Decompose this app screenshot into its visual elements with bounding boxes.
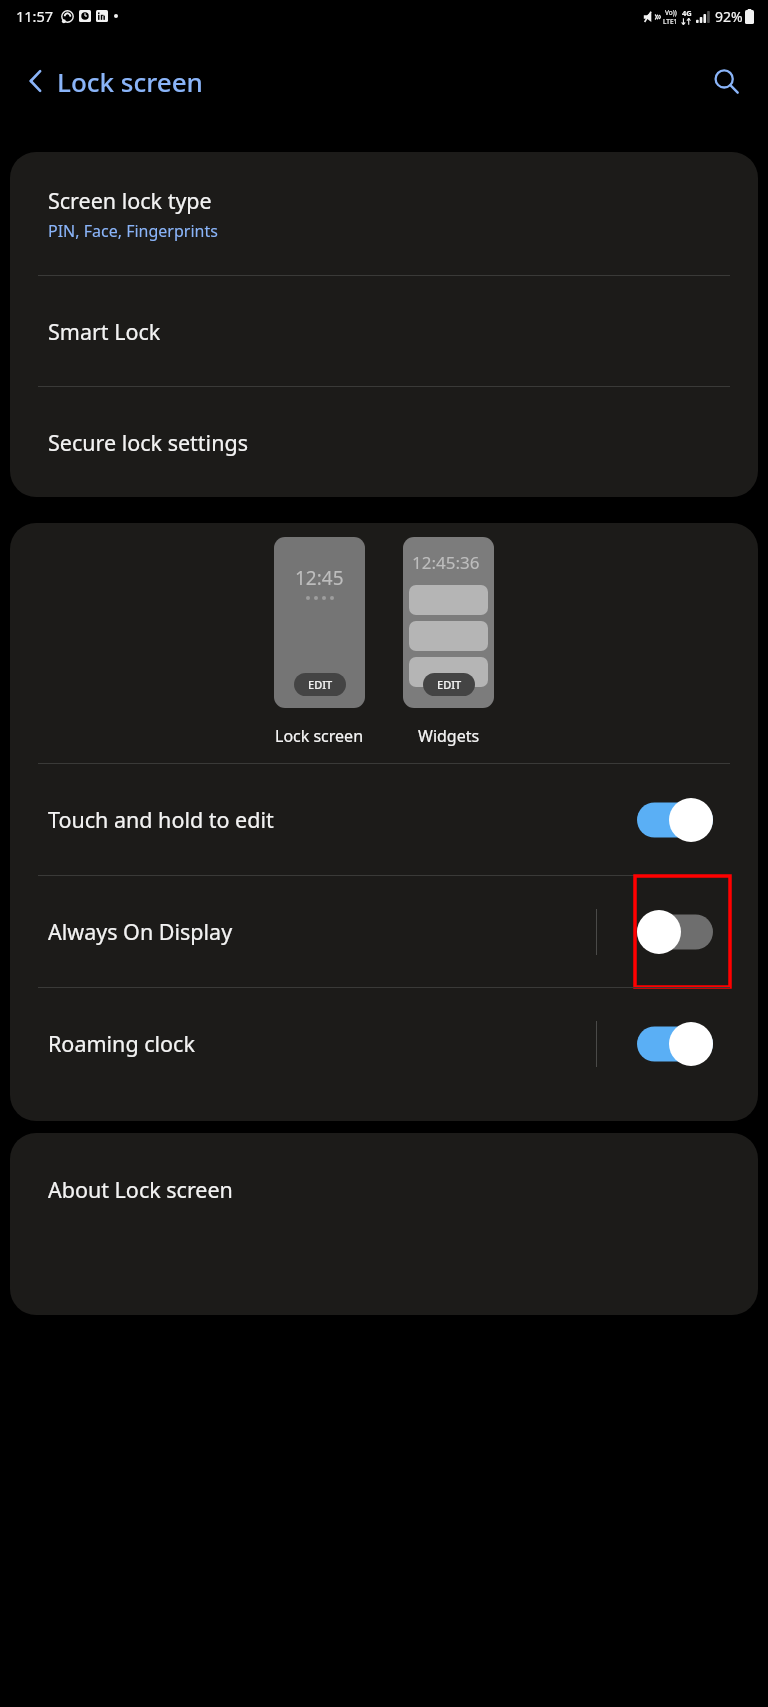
staticText: 11:57 [16,6,54,26]
button[interactable]: Screen lock type [10,152,758,275]
staticText: LTE1 [663,17,678,26]
staticText: Lock screen [275,725,364,747]
staticText: Smart Lock [48,317,161,346]
staticText: Secure lock settings [48,428,248,457]
button[interactable]: EDIT [294,673,346,696]
staticText: About Lock screen [48,1175,233,1204]
button[interactable]: Smart Lock [10,276,758,386]
button[interactable]: Touch and hold to edit [10,764,758,875]
staticText: Screen lock type [48,186,212,215]
staticText: PIN, Face, Fingerprints [48,220,218,242]
staticText: 12:45:36 [412,551,480,574]
staticText: EDIT [308,677,333,692]
button[interactable]: Secure lock settings [10,387,758,497]
staticText: 12:45 [295,565,344,591]
staticText: Touch and hold to edit [48,805,274,834]
button[interactable]: Always On Display [10,876,758,987]
button[interactable]: Back [6,51,66,111]
button[interactable]: Roaming clock [637,1022,713,1066]
button[interactable]: Search [698,53,754,109]
staticText: Always On Display [48,917,233,946]
button[interactable]: 12:45 [274,537,365,708]
button[interactable]: Roaming clock [10,988,758,1099]
staticText: Widgets [418,725,480,747]
staticText: Roaming clock [48,1029,195,1058]
button[interactable]: Touch and hold to edit [637,798,713,842]
staticText: Vo)) [665,8,677,17]
button[interactable]: Always On Display [637,910,713,954]
button[interactable]: 12:45:36 [403,537,494,708]
staticText: 4G [682,8,692,18]
button[interactable]: EDIT [423,673,475,696]
staticText: Lock screen [57,64,203,99]
staticText: EDIT [437,677,462,692]
staticText: 92% [715,7,743,26]
button[interactable]: About Lock screen [10,1133,758,1245]
